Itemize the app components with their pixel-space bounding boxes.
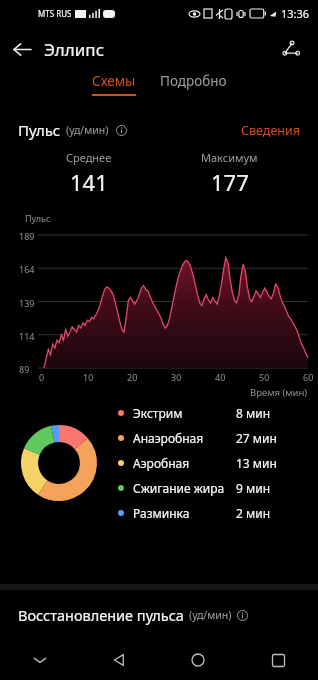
staticText: Сжигание жира	[133, 480, 225, 496]
staticText: 139	[19, 297, 35, 309]
staticText: Эллипс	[44, 38, 105, 61]
staticText: 89	[19, 363, 30, 375]
staticText: Схемы	[92, 72, 136, 90]
staticText: 114	[19, 330, 35, 342]
staticText: 27 мин	[236, 430, 277, 446]
staticText: 2 мин	[236, 505, 271, 521]
staticText: Среднее	[66, 150, 112, 165]
staticText: 0	[39, 371, 45, 383]
staticText: MTS RUS	[38, 8, 72, 19]
button[interactable]: Сведения	[241, 122, 300, 139]
button[interactable]: Анаэробная	[118, 425, 308, 450]
staticText: 20	[127, 371, 138, 383]
button[interactable]: Back	[0, 27, 44, 71]
staticText: (уд/мин)	[189, 608, 232, 622]
button[interactable]: Схемы	[84, 72, 144, 96]
staticText: Время (мин)	[250, 386, 308, 399]
staticText: 177	[211, 167, 249, 197]
staticText: 40	[215, 371, 226, 383]
staticText: 141	[70, 167, 108, 197]
button[interactable]: Аэробная	[118, 450, 308, 475]
button[interactable]: Подробно	[152, 72, 235, 90]
staticText: 9 мин	[236, 480, 271, 496]
button[interactable]: Home	[158, 640, 238, 680]
staticText: Аэробная	[133, 455, 190, 471]
button[interactable]: Hide	[0, 640, 79, 680]
staticText: Экстрим	[133, 405, 183, 421]
button[interactable]: Back	[79, 640, 158, 680]
staticText: (уд/мин)	[66, 123, 109, 137]
staticText: 8 мин	[236, 405, 271, 421]
button[interactable]: Recents	[238, 640, 318, 680]
staticText: 189	[19, 230, 35, 242]
staticText: Анаэробная	[133, 430, 204, 446]
staticText: Пульс	[25, 212, 51, 224]
button[interactable]: Экстрим	[118, 400, 308, 425]
button[interactable]: Разминка	[118, 500, 308, 525]
staticText: Восстановление пульса	[18, 605, 184, 625]
staticText: Подробно	[160, 72, 227, 90]
button[interactable]: Сжигание жира	[118, 475, 308, 500]
staticText: 164	[19, 263, 35, 275]
staticText: 30	[171, 371, 182, 383]
staticText: Пульс	[18, 120, 61, 140]
button[interactable]: Info	[114, 123, 128, 137]
staticText: 50	[259, 371, 270, 383]
staticText: 13:36	[281, 6, 310, 21]
button[interactable]: Share	[270, 28, 312, 70]
staticText: 10	[83, 371, 94, 383]
staticText: 60	[303, 371, 314, 383]
staticText: 13 мин	[236, 455, 277, 471]
staticText: Максимум	[201, 150, 258, 165]
staticText: Сведения	[241, 122, 300, 139]
staticText: Разминка	[133, 505, 190, 521]
button[interactable]: Восстановление пульса	[0, 590, 318, 640]
